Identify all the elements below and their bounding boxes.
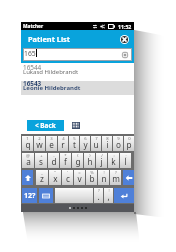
staticText: 9 <box>117 136 120 142</box>
staticText: i <box>106 139 109 150</box>
staticText: e <box>49 139 54 150</box>
staticText: 12? <box>24 191 36 201</box>
staticText: 0 <box>128 136 131 142</box>
staticText: 2 <box>38 136 41 142</box>
staticText: % <box>90 170 94 176</box>
button[interactable]: 16544 <box>21 65 134 79</box>
staticText: l <box>124 156 127 167</box>
staticText: - <box>53 153 55 159</box>
button[interactable]: 1 <box>22 136 33 151</box>
staticText: + <box>40 153 43 159</box>
button[interactable]: : <box>108 153 119 168</box>
button[interactable]: 6 <box>80 136 90 151</box>
staticText: r <box>61 139 65 150</box>
button[interactable]: ( <box>72 153 83 168</box>
button[interactable]: 9 <box>113 136 123 151</box>
staticText: _ <box>41 170 43 176</box>
button[interactable]: ; <box>120 153 131 168</box>
button[interactable]: " <box>49 170 61 185</box>
staticText: Lukasd Hildebrandt <box>23 68 79 76</box>
staticText: : <box>113 153 115 159</box>
button[interactable]: ! <box>104 188 113 203</box>
staticText: b <box>89 173 95 184</box>
button[interactable]: ' <box>62 170 73 185</box>
staticText: g <box>75 156 81 167</box>
staticText: 6 <box>84 136 87 142</box>
staticText: c <box>66 173 70 184</box>
staticText: q <box>25 139 31 150</box>
button[interactable]: 8 <box>102 136 112 151</box>
staticText: ! <box>103 170 105 176</box>
button[interactable]: ? <box>94 188 103 203</box>
staticText: 16543 <box>23 79 42 88</box>
button[interactable]: Shift <box>22 170 33 185</box>
staticText: 7 <box>95 136 98 142</box>
staticText: w <box>36 139 43 150</box>
button[interactable]: / <box>96 153 107 168</box>
staticText: s <box>39 156 43 167</box>
button[interactable]: ! <box>98 170 109 185</box>
staticText: ? <box>115 170 117 176</box>
button[interactable]: 12? <box>22 188 37 203</box>
staticText: ? <box>98 188 100 194</box>
staticText: ( <box>77 153 79 159</box>
staticText: , <box>107 191 110 202</box>
button[interactable]: 2 <box>34 136 45 151</box>
staticText: ' <box>67 170 68 176</box>
staticText: Matcher <box>23 23 44 30</box>
button[interactable]: Show keyboard <box>72 122 80 129</box>
staticText: 165 <box>24 49 36 58</box>
staticText: x <box>53 173 58 184</box>
staticText: 8 <box>106 136 109 142</box>
staticText: n <box>101 173 107 184</box>
button[interactable]: ? <box>110 170 121 185</box>
button[interactable]: Clear text <box>122 52 128 58</box>
staticText: . <box>97 191 100 202</box>
button[interactable]: 16543 <box>21 81 134 95</box>
button[interactable]: 5 <box>69 136 79 151</box>
staticText: ! <box>108 188 110 194</box>
staticText: 11:52 <box>118 23 132 30</box>
staticText: ) <box>89 153 91 159</box>
staticText: a <box>26 156 31 167</box>
button[interactable]: ) <box>84 153 95 168</box>
staticText: 3 <box>50 136 53 142</box>
staticText: " <box>54 170 56 176</box>
button[interactable]: * <box>60 153 71 168</box>
staticText: @ <box>26 153 30 159</box>
button[interactable]: = <box>74 170 85 185</box>
staticText: < Back <box>35 121 56 130</box>
button[interactable]: Space <box>55 188 93 203</box>
staticText: v <box>77 173 82 184</box>
staticText: f <box>64 156 67 167</box>
button[interactable]: 3 <box>46 136 57 151</box>
staticText: 5 <box>73 136 76 142</box>
button[interactable]: < Back <box>27 120 64 131</box>
button[interactable]: % <box>86 170 97 185</box>
staticText: m <box>112 173 120 184</box>
staticText: k <box>111 156 116 167</box>
button[interactable]: _ <box>36 170 48 185</box>
staticText: * <box>64 153 67 159</box>
button[interactable]: Backspace <box>123 170 134 185</box>
staticText: 1 <box>26 136 29 142</box>
button[interactable]: - <box>48 153 59 168</box>
staticText: = <box>78 170 81 176</box>
staticText: / <box>101 153 103 159</box>
button[interactable]: 4 <box>58 136 68 151</box>
staticText: u <box>93 139 99 150</box>
button[interactable]: 7 <box>91 136 101 151</box>
staticText: z <box>40 173 44 184</box>
staticText: y <box>83 139 88 150</box>
button[interactable]: + <box>35 153 47 168</box>
button[interactable]: @ <box>22 153 34 168</box>
button[interactable]: 0 <box>124 136 134 151</box>
button[interactable]: Close <box>120 35 129 44</box>
button[interactable]: Keyboard layout <box>39 188 53 203</box>
staticText: o <box>116 139 121 150</box>
button[interactable]: 165 <box>23 48 132 61</box>
staticText: d <box>51 156 57 167</box>
button[interactable]: Enter <box>114 188 134 203</box>
staticText: Patient List <box>28 34 71 44</box>
staticText: 4 <box>62 136 65 142</box>
